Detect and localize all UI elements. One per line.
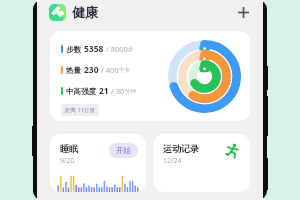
staticText: 步 <box>128 46 134 53</box>
staticText: / 400 <box>101 65 119 75</box>
button[interactable]: Health <box>49 4 66 21</box>
button[interactable]: 睡眠 <box>50 134 146 192</box>
staticText: 睡眠 <box>60 143 78 154</box>
staticText: 12/24 <box>163 156 182 166</box>
button[interactable]: Add <box>234 3 252 21</box>
staticText: / 30 <box>111 86 125 96</box>
staticText: 步数 <box>66 45 81 54</box>
staticText: 运动记录 <box>163 143 199 154</box>
staticText: 9/20 <box>60 156 75 166</box>
other: Running record <box>225 143 240 158</box>
button[interactable]: 开始 <box>109 143 138 158</box>
staticText: 距离 11公里 <box>65 106 95 114</box>
staticText: 健康 <box>72 4 98 20</box>
staticText: 热量 <box>66 66 81 75</box>
button[interactable]: 步数 <box>50 31 250 121</box>
staticText: 230 <box>84 64 99 76</box>
staticText: 21 <box>99 85 109 97</box>
staticText: / 8000 <box>106 44 128 54</box>
button[interactable]: 运动记录 <box>153 134 250 192</box>
staticText: 开始 <box>116 146 131 155</box>
staticText: 分钟 <box>125 88 136 95</box>
staticText: 中高强度 <box>66 87 96 96</box>
staticText: 5358 <box>84 43 104 55</box>
staticText: 千卡 <box>119 67 130 74</box>
